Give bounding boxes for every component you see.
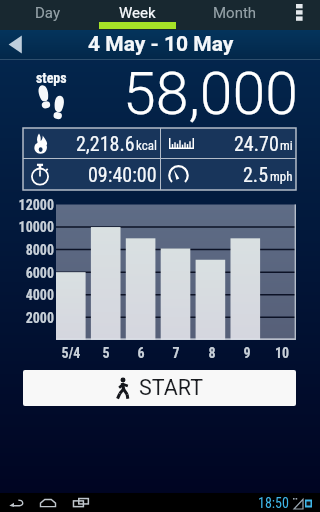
staticText: Week bbox=[119, 4, 156, 22]
staticText: 2.5 bbox=[243, 163, 269, 186]
staticText: 6000 bbox=[0, 265, 54, 281]
staticText: 8000 bbox=[0, 242, 54, 258]
staticText: 2000 bbox=[0, 310, 54, 326]
button[interactable]: 2.5 bbox=[161, 159, 296, 190]
staticText: steps bbox=[36, 70, 67, 86]
button[interactable]: 2,218.6 bbox=[23, 128, 160, 158]
button[interactable]: Week bbox=[94, 0, 181, 30]
staticText: 24.70 bbox=[234, 132, 279, 155]
button[interactable]: Month bbox=[181, 0, 288, 30]
button[interactable]: Previous week bbox=[0, 30, 38, 60]
staticText: mi bbox=[280, 138, 293, 153]
staticText: 5/4 bbox=[51, 345, 91, 361]
button[interactable]: Recents bbox=[67, 493, 95, 512]
staticText: 12000 bbox=[0, 197, 54, 213]
staticText: Day bbox=[35, 4, 60, 22]
staticText: kcal bbox=[136, 138, 157, 153]
staticText: 2,218.6 bbox=[76, 132, 135, 155]
staticText: 10 bbox=[262, 345, 302, 361]
staticText: 6 bbox=[121, 345, 161, 361]
staticText: 7 bbox=[156, 345, 196, 361]
staticText: 58,000 bbox=[123, 59, 298, 128]
staticText: 4 May - 10 May bbox=[88, 32, 234, 57]
staticText: 8 bbox=[192, 345, 232, 361]
button[interactable]: Back bbox=[2, 493, 30, 512]
button[interactable]: Home bbox=[34, 493, 62, 512]
staticText: Month bbox=[213, 4, 257, 22]
staticText: 09:40:00 bbox=[88, 163, 157, 186]
button[interactable]: START bbox=[23, 370, 296, 406]
staticText: 18:50 bbox=[258, 495, 289, 511]
button[interactable]: 24.70 bbox=[161, 128, 296, 158]
staticText: mph bbox=[270, 169, 293, 184]
staticText: START bbox=[139, 375, 204, 400]
staticText: 5 bbox=[86, 345, 126, 361]
button[interactable]: Day bbox=[0, 0, 94, 30]
button[interactable]: 09:40:00 bbox=[23, 159, 160, 190]
button[interactable]: More options bbox=[288, 0, 320, 30]
staticText: 10000 bbox=[0, 219, 54, 235]
staticText: 9 bbox=[227, 345, 267, 361]
staticText: 4000 bbox=[0, 287, 54, 303]
